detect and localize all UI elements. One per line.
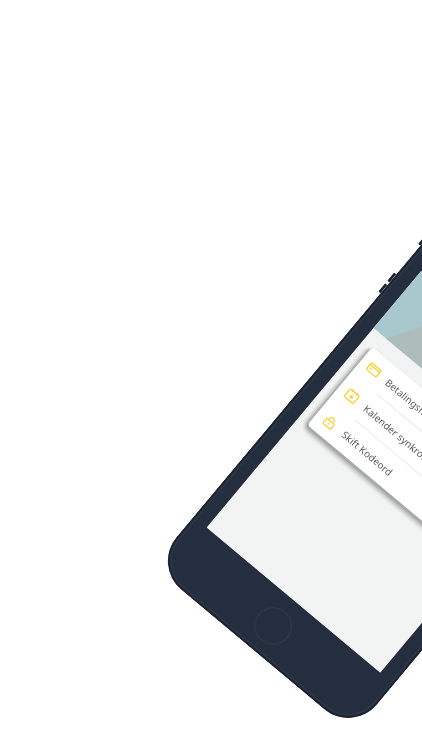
- staticText: Betalingsmetode: [382, 375, 422, 438]
- button[interactable]: Kalender synkronisering: [329, 373, 422, 530]
- button[interactable]: Skift Kodeord: [307, 399, 422, 556]
- button[interactable]: Betalingsmetode: [351, 347, 422, 504]
- staticText: Skift Kodeord: [339, 428, 396, 479]
- staticText: Kalender synkronisering: [360, 401, 422, 485]
